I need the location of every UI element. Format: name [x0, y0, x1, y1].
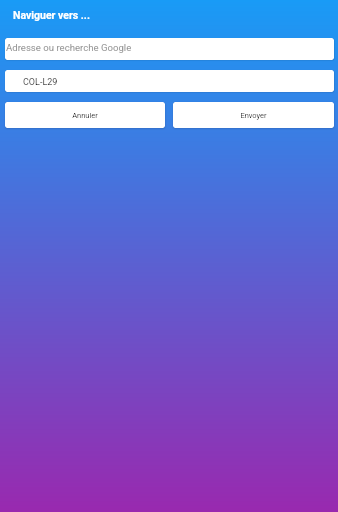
staticText: Envoyer [240, 111, 267, 120]
staticText: Adresse ou recherche Google [6, 42, 132, 53]
staticText: Naviguer vers ... [13, 9, 90, 21]
button[interactable]: Envoyer [173, 102, 334, 128]
button[interactable]: Adresse ou recherche Google [5, 38, 334, 60]
staticText: Annuler [72, 111, 98, 120]
button[interactable]: Annuler [5, 102, 165, 128]
staticText: COL-L29 [23, 77, 58, 88]
button[interactable]: COL-L29 [5, 70, 334, 92]
